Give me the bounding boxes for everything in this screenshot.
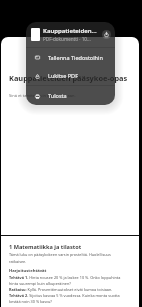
staticText: Harjoitustehtävät [9, 268, 47, 274]
staticText: Lukitse PDF [48, 72, 78, 79]
button[interactable]: Kauppatieteiden... [26, 22, 115, 47]
staticText: Kauppatieteiden pääsykoe-opas [9, 73, 128, 83]
button[interactable]: Share [102, 30, 111, 39]
button[interactable]: Tulosta [26, 86, 115, 105]
staticText: Tämä luku on pääsykokeen varsin prostelt… [9, 252, 111, 265]
staticText: Tehtävä 2. Sijoitus kasvaa 5 % vuodessa.… [9, 293, 120, 304]
staticText: Tulosta [48, 92, 67, 99]
staticText: Kauppatieteiden... [43, 27, 97, 35]
staticText: 1 Matematiikka ja tilastot [9, 243, 82, 251]
staticText: PDF-dokumentti · 10... [43, 36, 91, 42]
staticText: Ratkaisu: Kyllä. Prosenttimuutokset eivä… [9, 287, 113, 292]
staticText: Tehtävä 1. Hinta nousee 20 % ja laskee 1… [9, 275, 121, 286]
staticText: Tallenna Tiedostoihin [48, 54, 103, 61]
staticText: Sinä et tarvitse kuin tämän oppaan. [9, 93, 76, 98]
button[interactable]: Lukitse PDF [26, 66, 115, 85]
button[interactable]: Tallenna Tiedostoihin [26, 48, 115, 66]
